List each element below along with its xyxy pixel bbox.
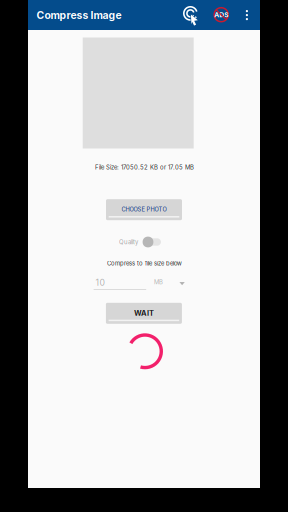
button[interactable]: Tap target (181, 3, 205, 29)
button[interactable]: More options (240, 3, 254, 27)
staticText: MB (154, 278, 163, 286)
staticText: Compress to file size below (107, 260, 182, 267)
button[interactable]: WAIT (106, 303, 182, 324)
button[interactable]: Unit: megabytes (153, 275, 187, 289)
button[interactable]: Quality (119, 235, 161, 249)
button[interactable]: Remove ads (209, 2, 233, 28)
staticText: Quality (119, 238, 138, 246)
button[interactable]: CHOOSE PHOTO (106, 199, 182, 220)
staticText: Compress Image (36, 9, 121, 22)
staticText: 10 (96, 277, 105, 288)
staticText: WAIT (134, 309, 154, 318)
staticText: ADS (214, 11, 228, 19)
staticText: File Size: 17050.52 KB or 17.05 MB (95, 164, 194, 171)
button[interactable]: Target file size (94, 274, 146, 291)
staticText: CHOOSE PHOTO (121, 206, 166, 213)
